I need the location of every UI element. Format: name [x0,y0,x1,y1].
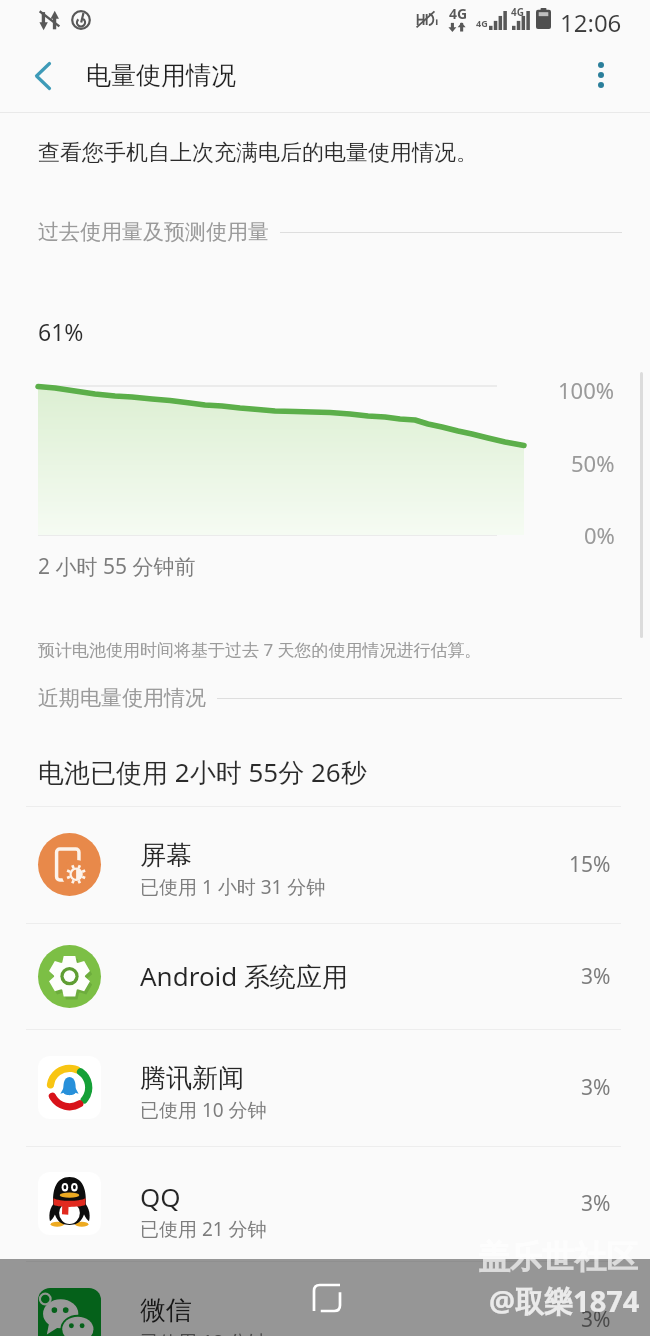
staticText: 过去使用量及预测使用量 [38,219,269,245]
staticText: 预计电池使用时间将基于过去 7 天您的使用情况进行估算。 [38,638,482,661]
staticText: Android 系统应用 [140,958,349,994]
button[interactable]: Back [15,48,71,104]
staticText: 近期电量使用情况 [38,685,206,711]
staticText: 3% [581,962,611,991]
button[interactable]: QQ [0,1146,650,1261]
staticText: 微信 [140,1294,192,1327]
staticText: 电量使用情况 [86,60,236,91]
staticText: 61% [38,316,84,347]
staticText: 15% [569,850,611,879]
staticText: 4G [449,4,468,23]
staticText: 腾讯新闻 [140,1062,244,1095]
staticText: 3% [581,1305,611,1334]
staticText: 3% [581,1189,611,1218]
staticText: 50% [571,448,615,478]
button[interactable]: Home [299,1270,355,1326]
staticText: 3% [581,1073,611,1102]
button[interactable]: More options [573,47,629,103]
staticText: 已使用 10 分钟 [140,1097,267,1123]
staticText: 12:06 [560,6,622,39]
staticText: 4G [476,17,488,29]
staticText: 已使用 18 分钟 [140,1329,267,1336]
button[interactable]: 腾讯新闻 [0,1029,650,1146]
staticText: 屏幕 [140,839,192,872]
staticText: 电池已使用 2小时 55分 26秒 [38,754,367,790]
staticText: QQ [140,1179,181,1214]
staticText: 4G [511,5,524,19]
staticText: 查看您手机自上次充满电后的电量使用情况。 [38,139,478,167]
staticText: 2 小时 55 分钟前 [38,552,196,581]
staticText: 已使用 1 小时 31 分钟 [140,874,326,900]
button[interactable]: 屏幕 [0,806,650,923]
button[interactable]: 微信 [0,1261,650,1336]
button[interactable]: Android 系统应用 [0,923,650,1029]
staticText: 盖乐世社区 [478,1237,638,1277]
staticText: 0% [584,520,615,550]
staticText: @取樂1874 [489,1281,640,1321]
staticText: 已使用 21 分钟 [140,1216,267,1242]
staticText: 100% [558,375,615,405]
